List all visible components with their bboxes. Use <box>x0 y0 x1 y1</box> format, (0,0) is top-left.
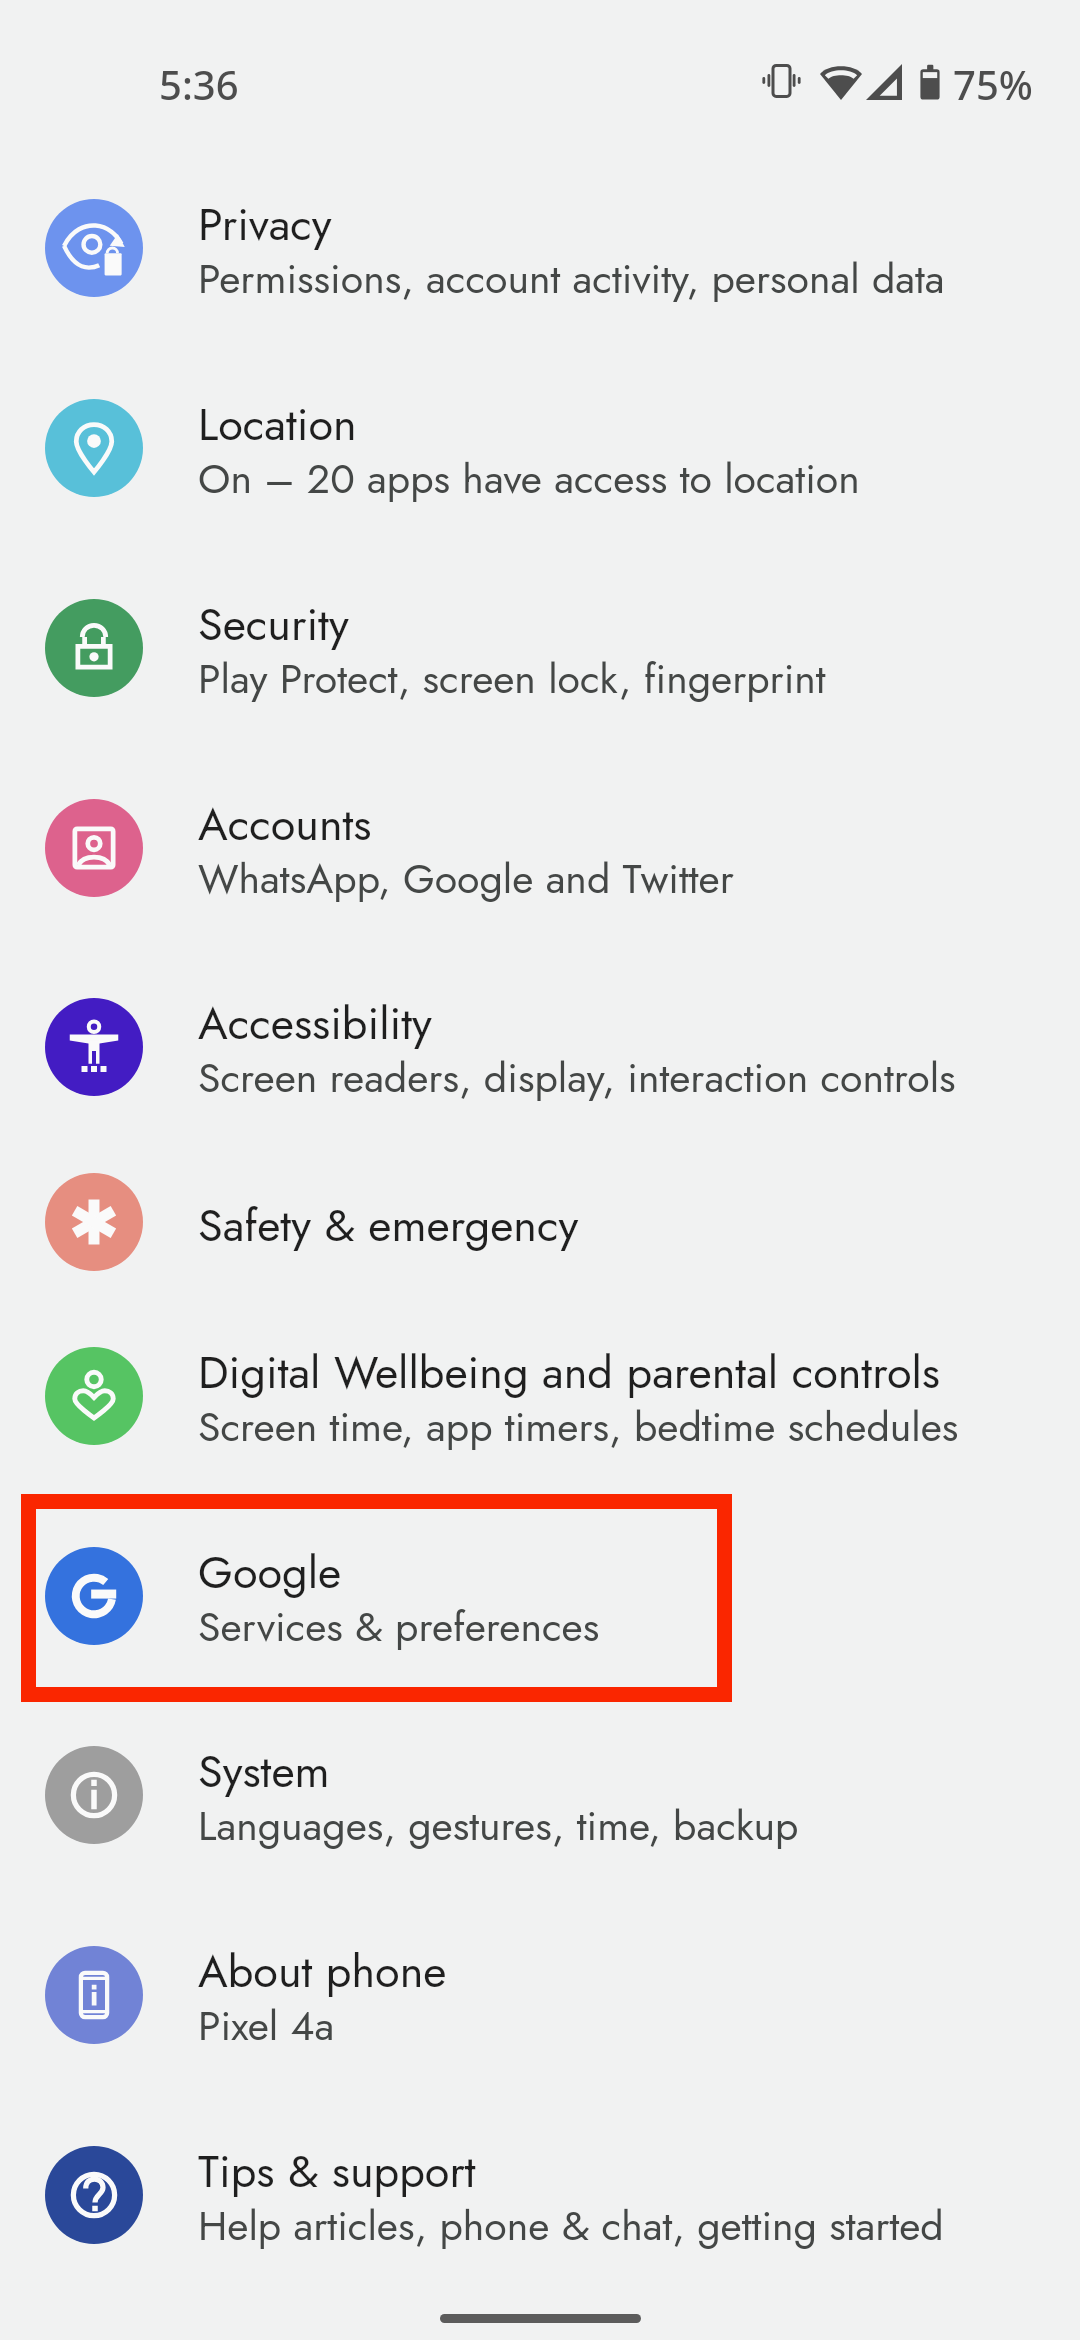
staticText: Languages, gestures, time, backup <box>198 1796 799 1855</box>
staticText: Safety & emergency <box>198 1193 579 1258</box>
button[interactable]: System <box>0 1696 1080 1896</box>
staticText: Services & preferences <box>198 1597 600 1656</box>
staticText: Google <box>198 1540 342 1605</box>
staticText: WhatsApp, Google and Twitter <box>198 849 734 908</box>
staticText: Screen readers, display, interaction con… <box>198 1048 956 1107</box>
staticText: System <box>198 1739 330 1804</box>
staticText: Pixel 4a <box>198 1996 335 2055</box>
other: Battery <box>918 64 942 101</box>
other: Vibrate mode <box>762 63 801 99</box>
button[interactable]: Digital Wellbeing and parental controls <box>0 1310 1080 1496</box>
staticText: Location <box>198 392 357 457</box>
button[interactable]: Location <box>0 348 1080 548</box>
button[interactable]: Tips & support <box>0 2096 1080 2296</box>
button[interactable]: Privacy <box>0 148 1080 348</box>
button[interactable]: About phone <box>0 1896 1080 2096</box>
button[interactable]: Safety & emergency <box>0 1135 1080 1310</box>
staticText: Help articles, phone & chat, getting sta… <box>198 2196 944 2255</box>
other: Mobile signal <box>866 64 902 100</box>
staticText: Screen time, app timers, bedtime schedul… <box>198 1397 959 1456</box>
staticText: Digital Wellbeing and parental controls <box>198 1340 940 1405</box>
other: Wi-Fi <box>820 63 862 100</box>
staticText: About phone <box>198 1939 447 2004</box>
button[interactable]: Google <box>0 1496 1080 1696</box>
staticText: On – 20 apps have access to location <box>198 449 860 508</box>
staticText: Privacy <box>198 192 332 257</box>
staticText: 5:36 <box>159 57 239 111</box>
button[interactable]: Accessibility <box>0 948 1080 1135</box>
staticText: Permissions, account activity, personal … <box>198 249 945 308</box>
button[interactable]: Security <box>0 548 1080 748</box>
staticText: Play Protect, screen lock, fingerprint <box>198 649 826 708</box>
staticText: Accessibility <box>198 991 432 1056</box>
staticText: Security <box>198 592 349 657</box>
button[interactable]: Accounts <box>0 748 1080 948</box>
staticText: Accounts <box>198 792 372 857</box>
staticText: Tips & support <box>198 2139 476 2204</box>
staticText: 75% <box>953 57 1033 111</box>
